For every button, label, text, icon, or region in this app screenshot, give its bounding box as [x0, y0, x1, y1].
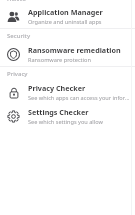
staticText: Ransomware protection: [28, 56, 91, 64]
button[interactable]: Ransomware remediation: [0, 42, 135, 66]
staticText: Application Manager: [28, 7, 103, 17]
staticText: Privacy Checker: [28, 83, 86, 93]
staticText: Ransomware remediation: [28, 45, 121, 55]
staticText: Organize and uninstall apps: [28, 18, 102, 26]
staticText: Security: [7, 32, 31, 40]
staticText: Settings Checker: [28, 107, 89, 117]
button[interactable]: Application Manager: [0, 4, 135, 28]
staticText: See which settings you allow: [28, 118, 103, 126]
staticText: See which apps can access your informati…: [28, 94, 130, 102]
button[interactable]: Settings Checker: [0, 104, 135, 128]
button[interactable]: Privacy Checker: [0, 80, 135, 104]
staticText: Privacy: [7, 70, 28, 78]
staticText: Device: [7, 0, 26, 1]
